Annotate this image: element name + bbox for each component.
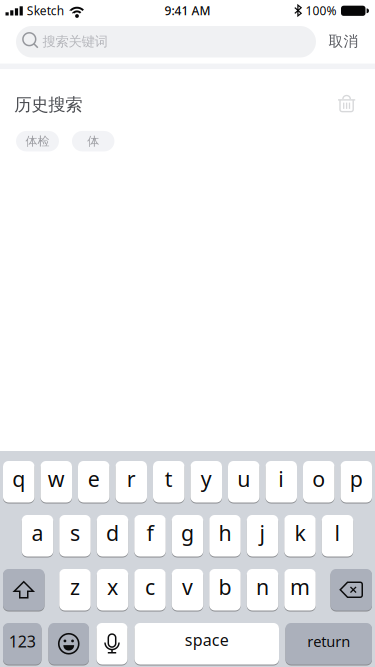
- button[interactable]: y: [190, 461, 222, 502]
- staticText: 9:41 AM: [164, 3, 210, 19]
- staticText: o: [312, 465, 325, 493]
- button[interactable]: h: [209, 515, 241, 556]
- staticText: 100%: [305, 3, 336, 19]
- staticText: 历史搜索: [14, 94, 82, 115]
- staticText: return: [307, 631, 350, 651]
- button[interactable]: w: [40, 461, 72, 502]
- staticText: space: [185, 629, 229, 650]
- button[interactable]: 123: [3, 623, 41, 664]
- button[interactable]: Search: [16, 26, 316, 57]
- button[interactable]: d: [97, 515, 128, 556]
- button[interactable]: v: [172, 569, 203, 610]
- staticText: a: [31, 519, 43, 547]
- staticText: m: [290, 573, 310, 601]
- staticText: v: [182, 573, 193, 601]
- button[interactable]: Shift: [3, 569, 44, 610]
- staticText: g: [181, 519, 194, 547]
- button[interactable]: e: [78, 461, 109, 502]
- button[interactable]: Delete: [330, 569, 372, 610]
- button[interactable]: space: [134, 623, 279, 664]
- staticText: p: [350, 465, 363, 493]
- button[interactable]: a: [22, 515, 53, 556]
- button[interactable]: q: [3, 461, 34, 502]
- staticText: b: [218, 573, 231, 601]
- staticText: u: [237, 465, 250, 493]
- staticText: n: [256, 573, 269, 601]
- staticText: h: [218, 519, 231, 547]
- staticText: s: [70, 519, 80, 547]
- staticText: q: [12, 465, 25, 493]
- button[interactable]: r: [115, 461, 147, 502]
- button[interactable]: t: [153, 461, 184, 502]
- button[interactable]: Clear history: [333, 89, 361, 117]
- staticText: l: [334, 519, 340, 547]
- button[interactable]: s: [59, 515, 91, 556]
- button[interactable]: n: [247, 569, 278, 610]
- button[interactable]: 体: [72, 131, 114, 151]
- button[interactable]: j: [247, 515, 278, 556]
- staticText: 体检: [25, 134, 49, 148]
- button[interactable]: m: [284, 569, 316, 610]
- button[interactable]: f: [134, 515, 166, 556]
- staticText: f: [146, 519, 153, 547]
- button[interactable]: return: [285, 623, 372, 664]
- button[interactable]: c: [134, 569, 166, 610]
- button[interactable]: z: [59, 569, 91, 610]
- staticText: x: [107, 573, 118, 601]
- button[interactable]: Dictate: [96, 623, 127, 664]
- button[interactable]: 取消: [321, 25, 365, 57]
- button[interactable]: x: [97, 569, 128, 610]
- button[interactable]: k: [284, 515, 316, 556]
- staticText: 体: [87, 134, 99, 148]
- staticText: w: [48, 465, 65, 493]
- button[interactable]: b: [209, 569, 241, 610]
- staticText: j: [259, 519, 265, 547]
- staticText: 取消: [328, 32, 358, 50]
- button[interactable]: g: [172, 515, 203, 556]
- button[interactable]: o: [303, 461, 334, 502]
- staticText: z: [70, 573, 80, 601]
- staticText: t: [165, 465, 173, 493]
- button[interactable]: l: [322, 515, 353, 556]
- staticText: Sketch: [27, 3, 64, 19]
- staticText: i: [278, 465, 284, 493]
- staticText: 搜索关键词: [42, 33, 107, 50]
- button[interactable]: 体检: [16, 131, 59, 151]
- button[interactable]: Emoji: [48, 623, 89, 664]
- button[interactable]: i: [265, 461, 297, 502]
- staticText: r: [127, 465, 136, 493]
- staticText: y: [201, 465, 212, 493]
- staticText: k: [294, 519, 305, 547]
- staticText: d: [106, 519, 119, 547]
- staticText: 123: [9, 631, 36, 652]
- button[interactable]: u: [228, 461, 259, 502]
- button[interactable]: p: [340, 461, 372, 502]
- staticText: e: [88, 465, 100, 493]
- staticText: c: [145, 573, 155, 601]
